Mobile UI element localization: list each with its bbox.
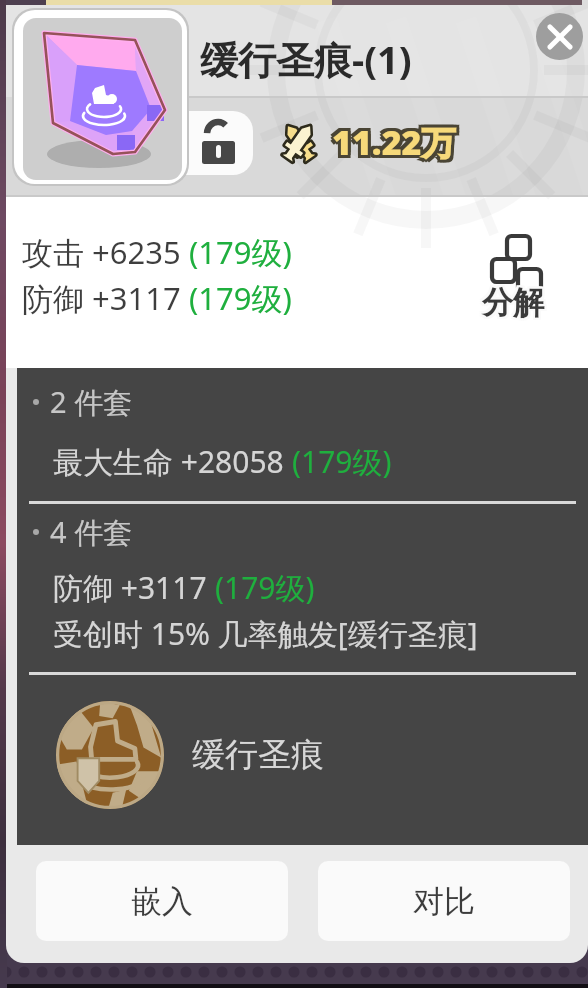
staticText: 分解 — [480, 285, 542, 324]
staticText: 分解 — [484, 283, 546, 322]
staticText: 受创时 15% 几率触发[缓行圣痕] — [53, 613, 478, 654]
staticText: 11.22万 — [332, 122, 456, 168]
staticText: 分解 — [480, 281, 542, 320]
staticText: 缓行圣痕 — [192, 734, 324, 776]
staticText: 分解 — [482, 283, 544, 322]
staticText: 分解 — [482, 285, 544, 324]
staticText: 分解 — [480, 283, 542, 322]
button[interactable]: Unlocked — [184, 111, 253, 175]
staticText: 分解 — [484, 285, 546, 324]
staticText: 11.22万 — [329, 116, 453, 162]
staticText: 2 件套 — [50, 382, 133, 422]
staticText: 11.22万 — [335, 119, 459, 165]
staticText: 分解 — [482, 281, 544, 320]
button[interactable]: Close — [536, 13, 583, 60]
staticText: 11.22万 — [335, 116, 459, 162]
staticText: 防御 +3117 — [22, 277, 189, 319]
button[interactable]: Decompose — [476, 225, 558, 325]
button[interactable] — [14, 10, 187, 184]
staticText: 分解 — [484, 281, 546, 320]
staticText: 最大生命 +28058 — [53, 441, 292, 482]
staticText: 对比 — [413, 882, 475, 921]
staticText: 防御 +3117 — [53, 567, 215, 608]
button[interactable]: 嵌入 — [36, 861, 288, 941]
staticText: 11.22万 — [332, 116, 456, 162]
staticText: 缓行圣痕-(1) — [200, 33, 412, 85]
button[interactable]: 对比 — [318, 861, 570, 941]
staticText: 11.22万 — [329, 119, 453, 165]
staticText: (179级) — [292, 441, 392, 482]
staticText: 嵌入 — [131, 882, 193, 921]
staticText: (179级) — [189, 231, 292, 273]
staticText: 11.22万 — [329, 122, 453, 168]
staticText: (179级) — [215, 567, 315, 608]
staticText: (179级) — [189, 277, 292, 319]
staticText: 11.22万 — [335, 122, 459, 168]
staticText: 4 件套 — [50, 512, 133, 552]
staticText: 11.22万 — [332, 119, 456, 165]
staticText: 攻击 +6235 — [22, 231, 189, 273]
